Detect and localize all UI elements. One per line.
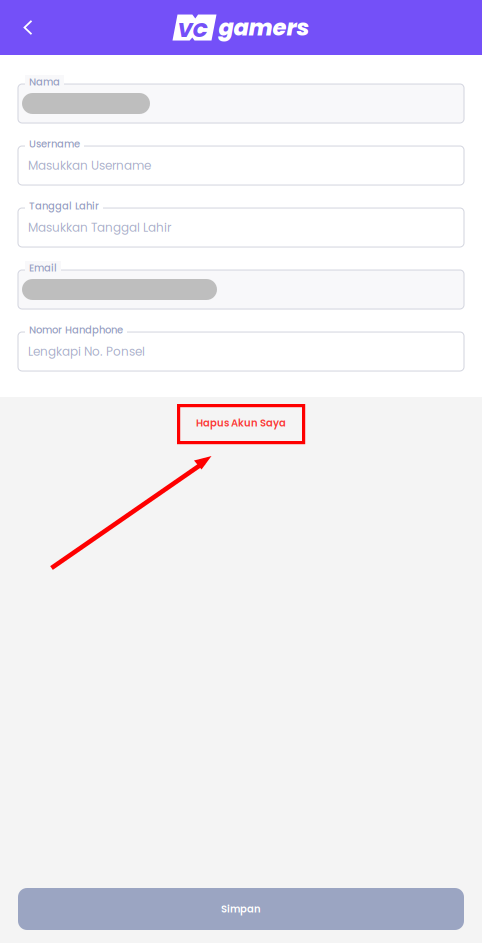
staticText: Masukkan Tanggal Lahir (28, 219, 171, 236)
staticText: Username (29, 137, 80, 151)
staticText: gamers (218, 12, 309, 43)
staticText: Masukkan Username (28, 157, 151, 174)
button[interactable]: Back (6, 0, 50, 55)
staticText: Tanggal Lahir (29, 199, 99, 213)
staticText: Nama (29, 75, 60, 89)
staticText: Hapus Akun Saya (196, 416, 286, 430)
button[interactable]: Simpan (18, 888, 464, 930)
staticText: Nomor Handphone (29, 323, 123, 337)
staticText: Lengkapi No. Ponsel (28, 343, 145, 360)
staticText: Simpan (221, 902, 261, 916)
staticText: VC (177, 16, 207, 44)
button[interactable]: Hapus Akun Saya (177, 402, 305, 444)
staticText: Email (29, 261, 57, 275)
